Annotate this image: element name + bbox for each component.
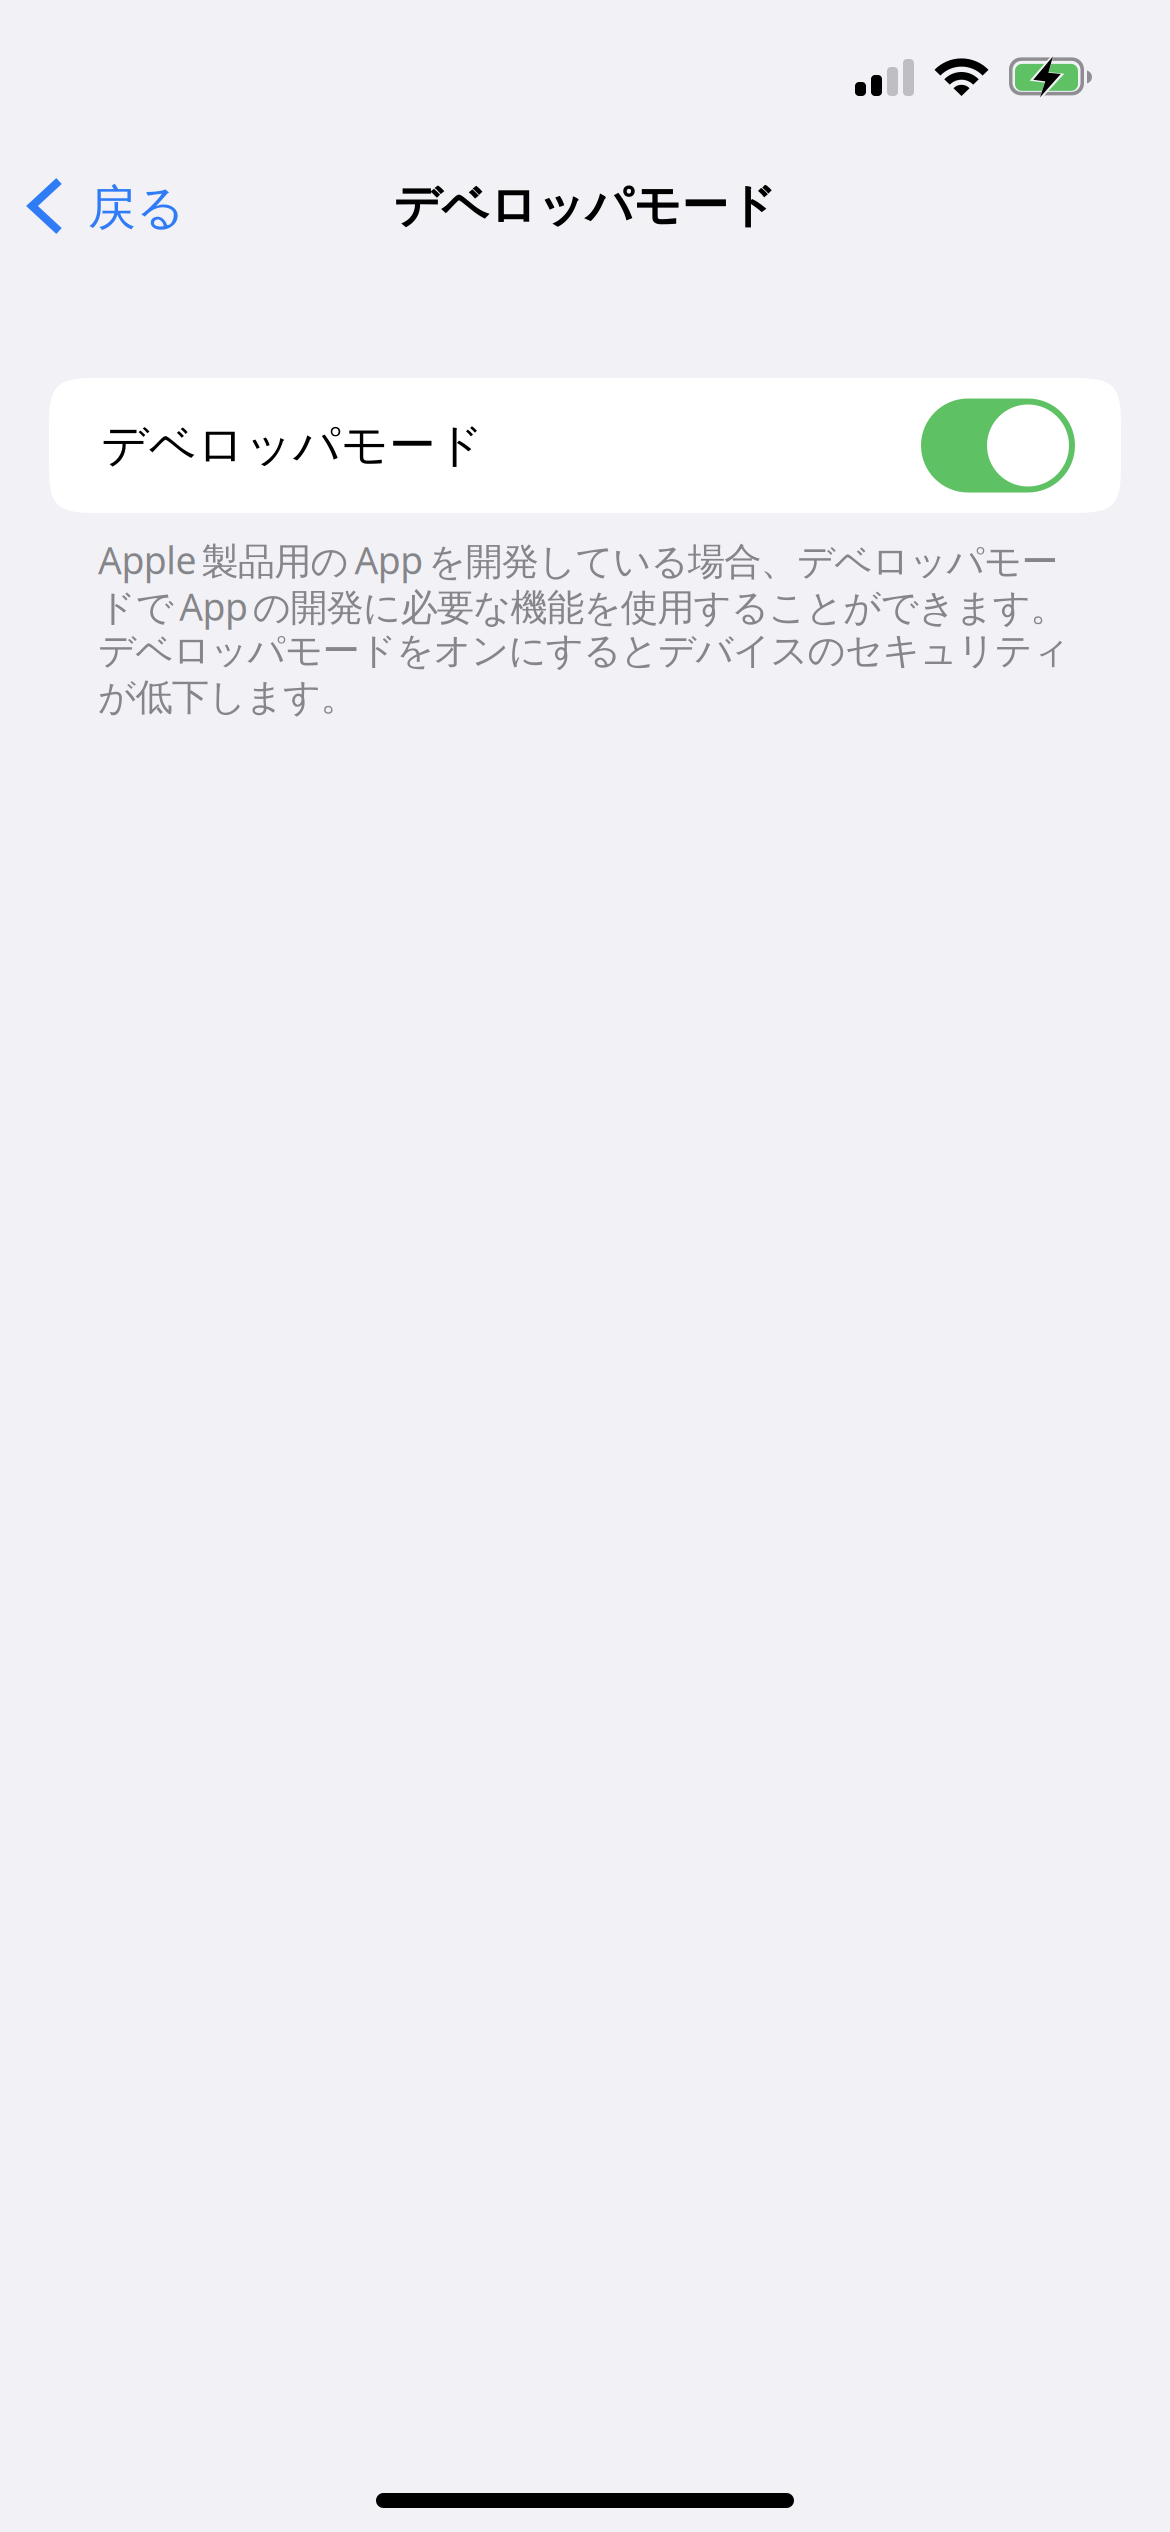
staticText: が低下します。 (98, 674, 357, 720)
button[interactable]: デベロッパモード (49, 378, 1121, 513)
staticText: ドで App の開発に必要な機能を使用することができます。 (98, 581, 1067, 631)
staticText: 戻る (88, 178, 185, 237)
staticText: デベロッパモードをオンにするとデバイスのセキュリティ (98, 628, 1070, 674)
staticText: デベロッパモード (393, 177, 776, 235)
staticText: Apple 製品用の App を開発している場合、デベロッパモー (98, 535, 1058, 585)
button[interactable]: 戻る (0, 154, 300, 258)
staticText: デベロッパモード (101, 417, 484, 474)
